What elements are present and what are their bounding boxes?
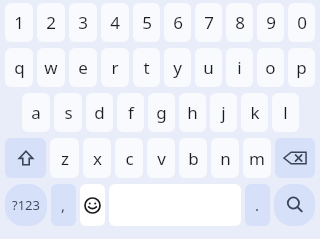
staticText: 1 [14,11,24,34]
staticText: 2 [46,11,56,34]
staticText: x [93,147,102,170]
staticText: 5 [142,11,152,34]
button[interactable]: o [257,48,284,87]
button[interactable]: t [133,48,160,87]
staticText: y [173,56,182,79]
staticText: q [14,56,25,79]
staticText: c [125,147,134,170]
button[interactable]: 4 [101,3,129,42]
button[interactable]: l [272,93,299,132]
button[interactable]: w [37,48,65,87]
button[interactable]: 1 [5,3,33,42]
staticText: 4 [110,11,120,34]
staticText: p [296,56,307,79]
staticText: d [94,101,105,124]
staticText: n [220,147,231,170]
button[interactable]: y [164,48,191,87]
button[interactable]: 5 [133,3,160,42]
button[interactable]: Emoji [80,184,105,226]
staticText: m [249,147,265,170]
staticText: b [188,147,199,170]
staticText: i [237,56,242,79]
staticText: . [255,195,260,215]
button[interactable]: e [69,48,97,87]
staticText: f [128,101,134,124]
staticText: g [156,101,167,124]
button[interactable]: v [147,138,175,178]
button[interactable]: s [54,93,82,132]
staticText: a [31,101,41,124]
button[interactable]: Backspace [275,138,315,178]
staticText: t [143,56,150,79]
button[interactable]: z [50,138,79,178]
staticText: v [157,147,166,170]
button[interactable]: r [101,48,129,87]
staticText: r [111,56,119,79]
button[interactable]: n [211,138,239,178]
staticText: u [203,56,214,79]
staticText: o [265,56,276,79]
button[interactable]: q [5,48,33,87]
button[interactable]: a [22,93,50,132]
button[interactable]: 7 [195,3,222,42]
staticText: 3 [78,11,88,34]
button[interactable]: m [243,138,271,178]
staticText: 9 [266,11,276,34]
staticText: 6 [173,11,183,34]
button[interactable]: p [288,48,315,87]
staticText: ?123 [12,196,40,214]
button[interactable]: Search [274,184,315,226]
button[interactable]: 8 [226,3,253,42]
button[interactable]: 9 [257,3,284,42]
staticText: j [221,101,226,124]
button[interactable]: Shift [5,138,46,178]
button[interactable]: u [195,48,222,87]
staticText: h [187,101,198,124]
staticText: s [64,101,73,124]
button[interactable]: i [226,48,253,87]
staticText: z [61,147,69,170]
staticText: e [78,56,88,79]
button[interactable]: j [210,93,237,132]
button[interactable]: b [179,138,207,178]
button[interactable]: h [179,93,206,132]
button[interactable]: . [245,184,270,226]
button[interactable]: f [117,93,144,132]
staticText: k [250,101,260,124]
button[interactable]: ?123 [5,184,47,226]
button[interactable]: 3 [69,3,97,42]
button[interactable]: k [241,93,268,132]
staticText: 0 [297,11,307,34]
button[interactable]: 0 [288,3,315,42]
staticText: l [283,101,288,124]
button[interactable]: d [86,93,113,132]
button[interactable]: x [83,138,111,178]
button[interactable]: c [115,138,143,178]
staticText: w [44,56,58,79]
staticText: , [61,195,66,215]
staticText: 7 [204,11,214,34]
button[interactable]: 6 [164,3,191,42]
button[interactable]: 2 [37,3,65,42]
button[interactable]: , [51,184,76,226]
button[interactable]: g [148,93,175,132]
staticText: 8 [235,11,245,34]
